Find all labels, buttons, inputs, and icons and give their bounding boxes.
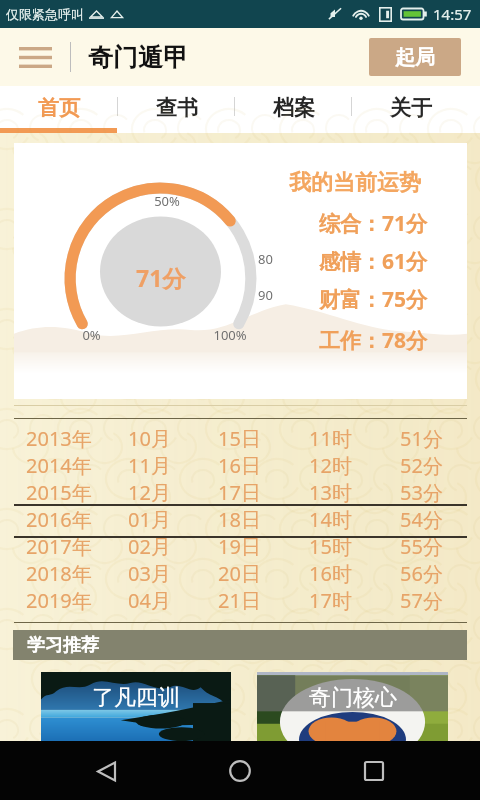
- staticText: 50%: [154, 192, 180, 210]
- staticText: 2016年: [26, 506, 92, 533]
- button[interactable]: Recent apps: [346, 743, 402, 799]
- staticText: 2019年: [26, 587, 92, 614]
- staticText: 首页: [38, 95, 80, 121]
- staticText: 51分: [400, 425, 443, 452]
- button[interactable]: 10月: [104, 404, 194, 622]
- staticText: 17时: [309, 587, 352, 614]
- button[interactable]: Back: [78, 743, 134, 799]
- staticText: 16日: [218, 452, 261, 479]
- staticText: 2015年: [26, 479, 92, 506]
- staticText: 学习推荐: [27, 634, 99, 657]
- staticText: 02月: [128, 533, 171, 560]
- button[interactable]: Home: [212, 743, 268, 799]
- button[interactable]: 关于: [352, 86, 469, 133]
- staticText: 55分: [400, 533, 443, 560]
- staticText: 2017年: [26, 533, 92, 560]
- button[interactable]: 51分: [376, 404, 467, 622]
- staticText: 20日: [218, 560, 261, 587]
- button[interactable]: 起局: [369, 38, 461, 76]
- staticText: 12时: [309, 452, 352, 479]
- staticText: 2014年: [26, 452, 92, 479]
- button[interactable]: Menu: [0, 28, 70, 86]
- button[interactable]: 了凡四训: [41, 672, 231, 741]
- staticText: 2013年: [26, 425, 92, 452]
- staticText: 感情：61分: [319, 247, 428, 273]
- staticText: 53分: [400, 479, 443, 506]
- staticText: 11时: [309, 425, 352, 452]
- staticText: 11月: [128, 452, 171, 479]
- button[interactable]: 奇门核心: [257, 672, 448, 741]
- staticText: 16时: [309, 560, 352, 587]
- staticText: 2018年: [26, 560, 92, 587]
- button[interactable]: 2013年: [14, 404, 104, 622]
- staticText: 57分: [400, 587, 443, 614]
- staticText: 04月: [128, 587, 171, 614]
- staticText: 了凡四训: [92, 684, 180, 712]
- staticText: 15日: [218, 425, 261, 452]
- staticText: 18日: [218, 506, 261, 533]
- staticText: 54分: [400, 506, 443, 533]
- staticText: 综合：71分: [319, 209, 428, 235]
- button[interactable]: 首页: [0, 86, 118, 133]
- staticText: 01月: [128, 506, 171, 533]
- staticText: 档案: [273, 95, 315, 121]
- staticText: 12月: [128, 479, 171, 506]
- staticText: 90: [258, 286, 273, 304]
- staticText: 13时: [309, 479, 352, 506]
- staticText: 查书: [156, 95, 198, 121]
- staticText: 14:57: [433, 4, 472, 24]
- staticText: 奇门核心: [309, 684, 397, 712]
- staticText: 80: [258, 250, 273, 268]
- button[interactable]: 11时: [285, 404, 376, 622]
- staticText: 起局: [395, 45, 435, 70]
- button[interactable]: 15日: [194, 404, 285, 622]
- staticText: 仅限紧急呼叫: [6, 6, 84, 22]
- staticText: 21日: [218, 587, 261, 614]
- staticText: 17日: [218, 479, 261, 506]
- button[interactable]: 档案: [235, 86, 352, 133]
- staticText: 奇门遁甲: [88, 42, 188, 73]
- staticText: 52分: [400, 452, 443, 479]
- staticText: 工作：78分: [319, 326, 428, 352]
- staticText: 关于: [390, 95, 432, 121]
- button[interactable]: 学习推荐: [13, 630, 467, 660]
- staticText: 71分: [136, 262, 186, 293]
- staticText: 14时: [309, 506, 352, 533]
- staticText: 100%: [213, 326, 247, 344]
- staticText: 19日: [218, 533, 261, 560]
- staticText: 15时: [309, 533, 352, 560]
- staticText: 03月: [128, 560, 171, 587]
- staticText: 10月: [128, 425, 171, 452]
- staticText: 56分: [400, 560, 443, 587]
- button[interactable]: 查书: [118, 86, 235, 133]
- staticText: 0%: [82, 326, 101, 344]
- staticText: 我的当前运势: [289, 169, 421, 195]
- staticText: 财富：75分: [319, 285, 428, 311]
